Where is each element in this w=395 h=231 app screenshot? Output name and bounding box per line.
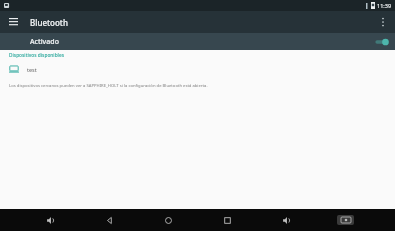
staticText: Dispositivos disponibles (9, 52, 64, 59)
staticText: Bluetooth (30, 17, 68, 28)
button[interactable]: Screenshot (316, 209, 375, 231)
staticText: test (27, 66, 37, 73)
button[interactable]: Home (139, 209, 198, 231)
button[interactable]: Volume down (20, 209, 80, 231)
button[interactable]: More options (375, 14, 391, 30)
button[interactable]: Back (80, 209, 139, 231)
button[interactable]: Open navigation drawer (5, 14, 21, 30)
button[interactable]: Volume up (257, 209, 316, 231)
staticText: Activado (30, 37, 59, 47)
button[interactable]: test (0, 61, 395, 77)
staticText: 11:39 (377, 2, 392, 9)
button[interactable]: Recent apps (198, 209, 257, 231)
staticText: Los dispositivos cercanos pueden ver a S… (9, 83, 208, 89)
button[interactable]: Activado (0, 33, 395, 50)
